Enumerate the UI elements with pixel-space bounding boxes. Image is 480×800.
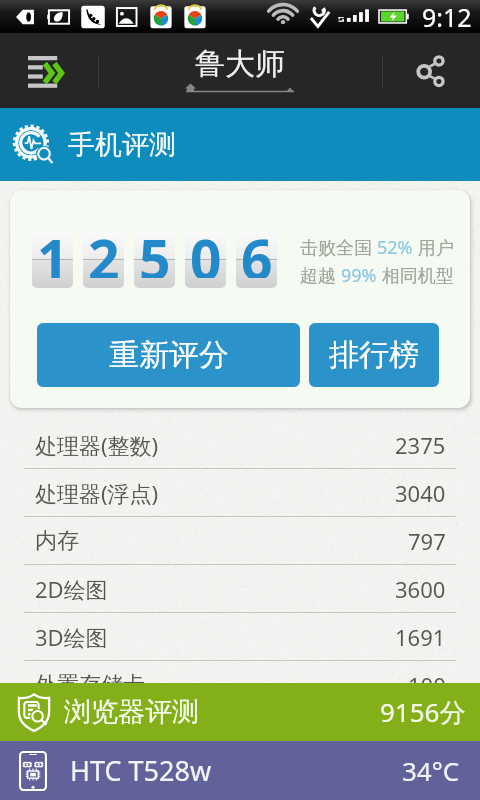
staticText: 34°C <box>402 753 460 788</box>
staticText: 超越 <box>300 263 341 288</box>
button[interactable]: 处理器(浮点) <box>0 469 480 517</box>
staticText: 52% <box>377 235 413 260</box>
staticText: 处理器(浮点) <box>35 478 159 508</box>
staticText: 处理器(整数) <box>35 430 159 460</box>
staticText: 2375 <box>395 430 446 460</box>
staticText: 排行榜 <box>329 336 419 374</box>
button[interactable]: Share <box>382 33 480 108</box>
button[interactable]: 重新评分 <box>37 323 300 387</box>
staticText: 3600 <box>395 574 446 604</box>
staticText: 用户 <box>413 235 454 260</box>
staticText: 99% <box>341 263 377 288</box>
staticText: 浏览器评测 <box>64 695 199 729</box>
staticText: 1691 <box>395 622 446 652</box>
staticText: 3040 <box>395 478 446 508</box>
staticText: 797 <box>408 526 446 556</box>
button[interactable]: 外置存储卡 <box>0 661 480 709</box>
staticText: 2D绘图 <box>35 574 108 604</box>
staticText: 6 <box>241 221 273 278</box>
staticText: 重新评分 <box>109 336 229 374</box>
staticText: 手机评测 <box>68 128 176 162</box>
staticText: 2 <box>88 221 120 278</box>
staticText: 5 <box>139 221 171 278</box>
button[interactable]: HTC T528w <box>0 741 480 800</box>
button[interactable]: 2D绘图 <box>0 565 480 613</box>
staticText: 3D绘图 <box>35 622 108 652</box>
button[interactable]: 排行榜 <box>309 323 439 387</box>
staticText: 内存 <box>35 527 79 555</box>
button[interactable]: 3D绘图 <box>0 613 480 661</box>
staticText: 鲁大师 <box>195 45 285 83</box>
staticText: 相同机型 <box>377 263 454 288</box>
button[interactable]: 内存 <box>0 517 480 565</box>
staticText: 9:12 <box>422 0 472 33</box>
staticText: HTC T528w <box>70 752 212 789</box>
button[interactable]: 浏览器评测 <box>0 683 480 741</box>
button[interactable]: 处理器(整数) <box>0 421 480 469</box>
staticText: 0 <box>190 221 222 278</box>
button[interactable]: Menu <box>0 33 98 108</box>
staticText: 外置存储卡 <box>35 671 145 699</box>
staticText: 100 <box>408 670 446 700</box>
staticText: 击败全国 <box>300 235 377 260</box>
staticText: 9156分 <box>380 694 466 730</box>
staticText: 1 <box>37 221 69 278</box>
